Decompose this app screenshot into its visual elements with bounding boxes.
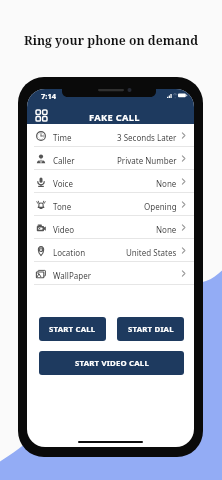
staticText: None	[156, 178, 177, 189]
button[interactable]: Time	[27, 124, 194, 147]
button[interactable]: Voice	[27, 170, 194, 193]
staticText: Private Number	[117, 155, 177, 166]
staticText: None	[156, 224, 177, 235]
button[interactable]: Video	[27, 216, 194, 239]
button[interactable]: START VIDEO CALL	[39, 351, 184, 375]
staticText: Caller	[53, 155, 75, 166]
button[interactable]: Location	[27, 239, 194, 262]
staticText: WallPaper	[53, 270, 91, 281]
staticText: United States	[126, 247, 177, 258]
staticText: Opening	[144, 201, 177, 212]
button[interactable]: Tone	[27, 193, 194, 216]
staticText: Ring your phone on demand	[0, 32, 222, 49]
staticText: Voice	[53, 178, 73, 189]
button[interactable]: START DIAL	[117, 317, 184, 341]
staticText: Time	[53, 132, 72, 143]
button[interactable]: Caller	[27, 147, 194, 170]
staticText: Tone	[53, 201, 72, 212]
staticText: 7:14	[41, 91, 56, 101]
staticText: Video	[53, 224, 75, 235]
staticText: START CALL	[49, 324, 96, 335]
button[interactable]: WallPaper	[27, 262, 194, 285]
staticText: FAKE CALL	[89, 111, 140, 124]
staticText: START DIAL	[128, 324, 174, 335]
button[interactable]: START CALL	[39, 317, 106, 341]
button[interactable]: Menu	[36, 110, 47, 121]
staticText: 3 Seconds Later	[117, 132, 177, 143]
staticText: START VIDEO CALL	[75, 358, 149, 369]
staticText: Location	[53, 247, 86, 258]
